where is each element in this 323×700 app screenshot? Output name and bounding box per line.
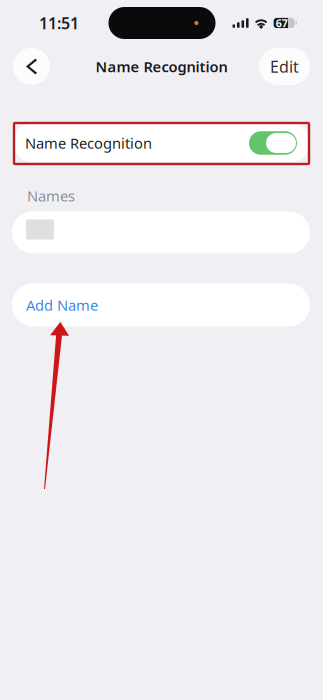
button[interactable]: Name Recognition bbox=[13, 124, 310, 162]
staticText: 67 bbox=[276, 16, 288, 30]
staticText: Name Recognition bbox=[95, 57, 227, 76]
staticText: Add Name bbox=[26, 295, 98, 315]
button[interactable]: Edit bbox=[259, 48, 310, 85]
button[interactable]: Add Name bbox=[12, 283, 310, 326]
button[interactable]: Name entry bbox=[12, 211, 310, 253]
staticText: Edit bbox=[270, 56, 299, 77]
staticText: Names bbox=[27, 186, 75, 205]
button[interactable]: Back bbox=[13, 48, 50, 85]
staticText: Name Recognition bbox=[25, 133, 152, 153]
staticText: 11:51 bbox=[39, 12, 79, 34]
